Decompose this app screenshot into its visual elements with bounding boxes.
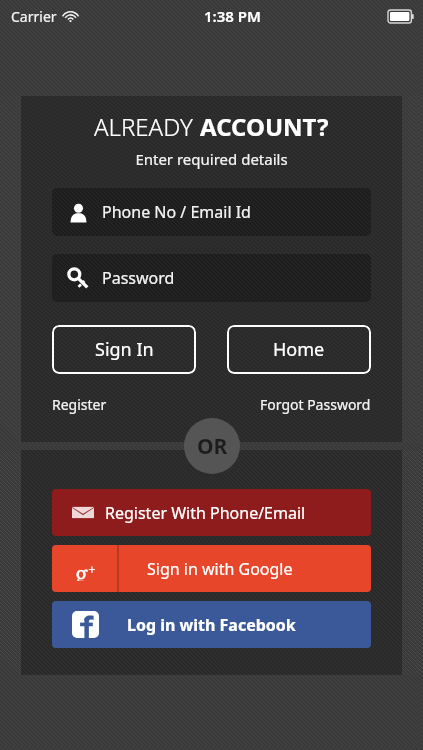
button[interactable]: Log in with Facebook	[52, 601, 371, 648]
staticText: Password	[102, 267, 175, 289]
button[interactable]: Sign in with Google	[52, 545, 371, 592]
button[interactable]: Phone or Email field	[52, 188, 371, 236]
staticText: Sign In	[95, 337, 154, 362]
button[interactable]: Password field	[52, 254, 371, 302]
button[interactable]: Forgot Password	[260, 395, 371, 414]
button[interactable]: Home	[227, 325, 371, 374]
staticText: Register With Phone/Email	[105, 502, 306, 524]
staticText: 1:38 PM	[204, 6, 261, 26]
button[interactable]: Sign In	[52, 325, 196, 374]
staticText: +	[88, 560, 96, 579]
staticText: Enter required details	[135, 149, 288, 169]
staticText: Phone No / Email Id	[102, 201, 251, 223]
staticText: Register	[52, 395, 107, 414]
staticText: ACCOUNT?	[200, 110, 329, 143]
staticText: Home	[273, 337, 325, 362]
staticText: Sign in with Google	[147, 558, 293, 580]
staticText: Log in with Facebook	[127, 614, 296, 636]
staticText: g	[75, 557, 88, 581]
staticText: OR	[197, 432, 228, 461]
staticText: Carrier	[11, 7, 57, 26]
staticText: ALREADY	[94, 110, 200, 143]
button[interactable]: Register With Phone or Email	[52, 489, 371, 536]
staticText: Forgot Password	[260, 395, 371, 414]
button[interactable]: Register	[52, 395, 107, 414]
